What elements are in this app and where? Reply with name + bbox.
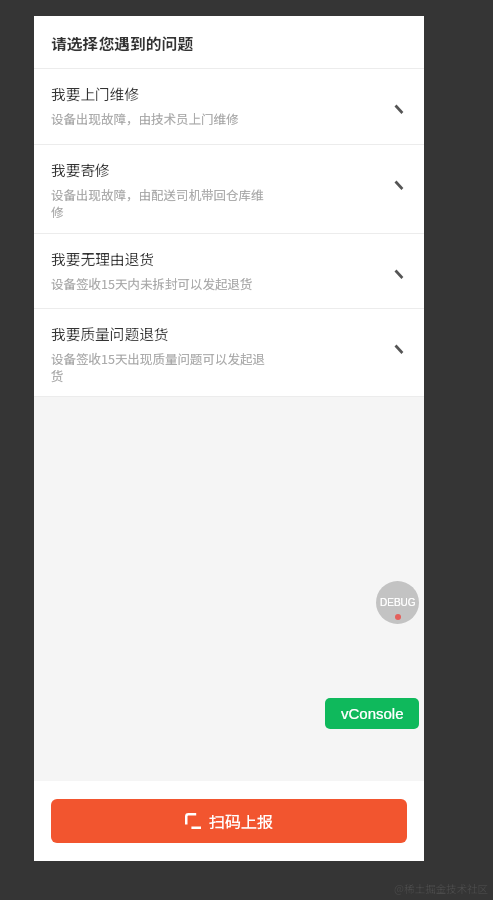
button[interactable]: 我要质量问题退货 — [34, 309, 424, 397]
button[interactable]: More — [391, 177, 406, 192]
staticText: 扫码上报 — [209, 809, 274, 832]
staticText: 我要无理由退货 — [51, 248, 154, 269]
button[interactable]: vConsole — [325, 698, 419, 729]
staticText: 我要上门维修 — [51, 83, 140, 104]
button[interactable]: Debug — [376, 581, 419, 624]
staticText: @稀土掘金技术社区 — [394, 881, 488, 896]
button[interactable]: More — [391, 341, 406, 356]
staticText: 我要质量问题退货 — [51, 323, 169, 344]
staticText: 我要寄修 — [51, 159, 110, 180]
button[interactable]: 扫码上报 — [51, 799, 407, 843]
staticText: 请选择您遇到的问题 — [51, 32, 194, 55]
button[interactable]: More — [391, 266, 406, 281]
button[interactable]: 我要无理由退货 — [34, 234, 424, 309]
button[interactable]: 我要上门维修 — [34, 69, 424, 145]
staticText: vConsole — [341, 705, 404, 722]
staticText: 设备签收15天出现质量问题可以发起退货 — [51, 349, 267, 385]
button[interactable]: 我要寄修 — [34, 145, 424, 234]
button[interactable]: More — [391, 101, 406, 116]
staticText: 设备出现故障，由技术员上门维修 — [51, 109, 239, 127]
staticText: DEBUG — [380, 597, 416, 608]
staticText: 设备出现故障，由配送司机带回仓库维修 — [51, 185, 267, 221]
staticText: 设备签收15天内未拆封可以发起退货 — [51, 274, 253, 292]
